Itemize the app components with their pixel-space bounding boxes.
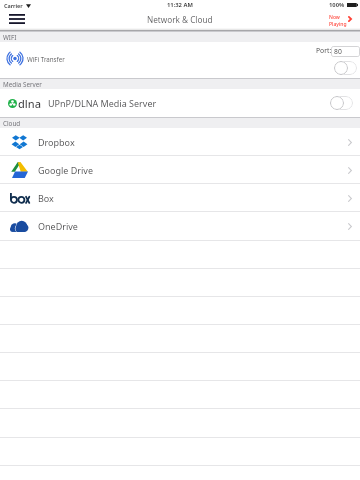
staticText: 11:32 AM: [167, 1, 193, 9]
staticText: Media Server: [3, 80, 42, 89]
staticText: Dropbox: [38, 136, 75, 148]
staticText: Port:: [316, 46, 332, 55]
staticText: Box: [38, 192, 54, 204]
button[interactable]: dlna: [0, 89, 360, 117]
staticText: Google Drive: [38, 164, 93, 176]
button[interactable]: Toggle: [330, 96, 353, 110]
staticText: OneDrive: [38, 220, 78, 232]
staticText: WiFi Transfer: [27, 55, 65, 63]
staticText: 80: [334, 47, 342, 56]
staticText: Now: [329, 14, 340, 21]
staticText: Carrier: [4, 2, 23, 9]
button[interactable]: Dropbox: [0, 128, 360, 156]
button[interactable]: WiFi Transfer: [0, 42, 360, 78]
staticText: WIFI: [3, 33, 17, 42]
staticText: Playing: [329, 21, 347, 28]
button[interactable]: 80: [331, 46, 360, 57]
button[interactable]: OneDrive: [0, 212, 360, 240]
button[interactable]: Now: [329, 14, 347, 28]
button[interactable]: Google Drive: [0, 156, 360, 184]
staticText: Network & Cloud: [147, 14, 213, 25]
button[interactable]: Toggle: [334, 61, 357, 75]
button[interactable]: Menu: [9, 14, 25, 24]
staticText: dlna: [18, 96, 41, 111]
staticText: 100%: [329, 1, 345, 9]
staticText: UPnP/DLNA Media Server: [48, 97, 157, 109]
button[interactable]: Box: [0, 184, 360, 212]
staticText: Cloud: [3, 119, 21, 128]
